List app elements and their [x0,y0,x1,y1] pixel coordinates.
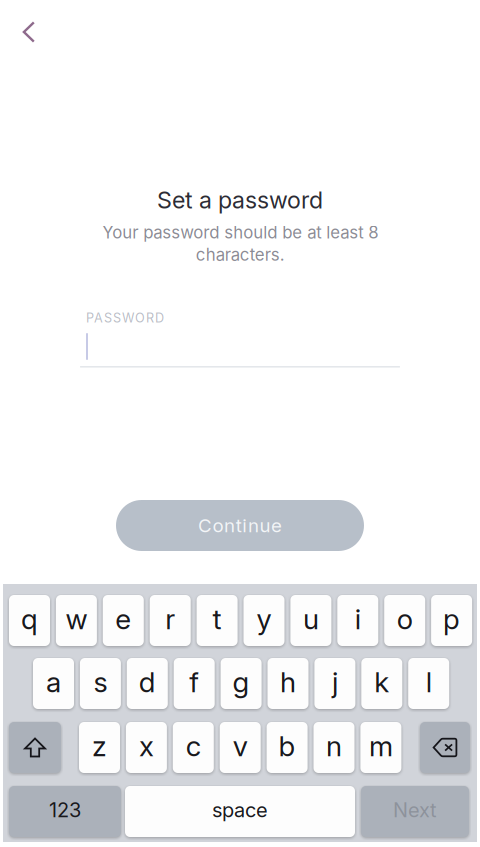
staticText: l [426,665,432,699]
button[interactable]: h [267,658,308,709]
staticText: space [212,798,268,822]
staticText: r [165,602,175,636]
button[interactable]: p [431,595,472,646]
staticText: v [233,729,248,763]
staticText: c [186,729,201,763]
button[interactable]: g [221,658,262,709]
button[interactable]: r [150,595,191,646]
button[interactable]: c [173,722,214,773]
staticText: Set a password [157,186,323,214]
staticText: PASSWORD [86,310,164,326]
button[interactable]: f [174,658,215,709]
button[interactable]: Next [361,786,469,837]
button[interactable]: Shift [9,722,61,773]
button[interactable]: t [197,595,238,646]
button[interactable]: k [361,658,402,709]
staticText: p [443,602,460,636]
staticText: s [93,665,107,699]
staticText: g [233,665,250,699]
staticText: k [374,665,389,699]
button[interactable]: d [127,658,168,709]
button[interactable]: y [243,595,284,646]
staticText: h [280,665,296,699]
staticText: 123 [49,798,81,822]
button[interactable]: n [313,722,354,773]
staticText: f [189,665,199,699]
staticText: w [65,602,87,636]
staticText: t [213,602,222,636]
button[interactable]: s [80,658,121,709]
staticText: o [397,602,413,636]
staticText: Next [393,798,437,822]
staticText: j [332,665,338,699]
button[interactable]: e [103,595,144,646]
staticText: x [139,729,154,763]
button[interactable]: i [337,595,378,646]
staticText: i [355,602,361,636]
staticText: b [279,729,296,763]
staticText: u [303,602,319,636]
staticText: q [21,602,38,636]
button[interactable]: Back [7,10,51,54]
button[interactable]: j [314,658,355,709]
button[interactable]: m [360,722,401,773]
button[interactable]: x [126,722,167,773]
staticText: d [139,665,156,699]
staticText: a [46,665,61,699]
staticText: z [92,729,107,763]
button[interactable]: Delete [420,722,470,773]
button[interactable]: z [79,722,120,773]
button[interactable]: v [220,722,261,773]
button[interactable]: 123 [9,786,121,837]
button[interactable]: w [56,595,97,646]
staticText: Your password should be at least 8 chara… [102,222,378,265]
button[interactable]: q [9,595,50,646]
staticText: Continue [198,514,282,537]
button[interactable]: l [408,658,449,709]
staticText: m [369,729,393,763]
staticText: y [256,602,271,636]
button[interactable]: a [33,658,74,709]
button[interactable]: u [290,595,331,646]
staticText: n [326,729,342,763]
button[interactable]: space [125,786,355,837]
button[interactable]: o [384,595,425,646]
staticText: e [115,602,131,636]
button[interactable]: Continue [116,500,364,551]
button[interactable]: b [267,722,308,773]
